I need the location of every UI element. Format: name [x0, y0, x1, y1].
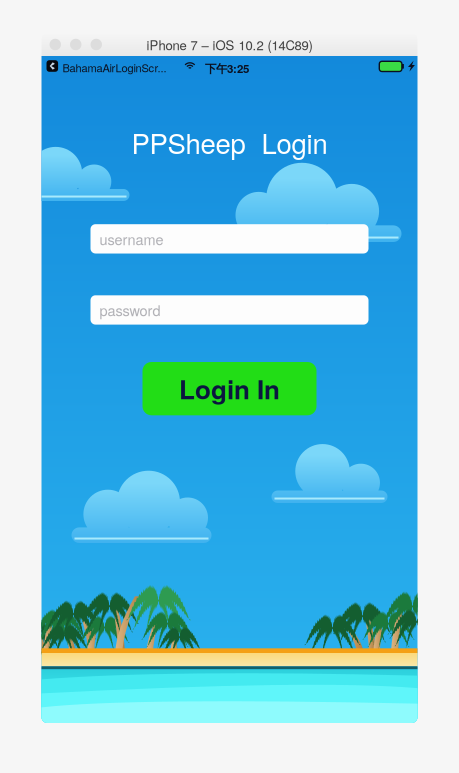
staticText: username — [99, 228, 163, 249]
staticText: BahamaAirLoginScr... — [62, 60, 166, 75]
staticText: 下午3:25 — [205, 60, 249, 76]
staticText: PPSheep Login — [131, 122, 327, 162]
staticText: password — [99, 299, 160, 320]
button[interactable]: Back — [46, 60, 58, 72]
button[interactable]: password — [90, 295, 368, 325]
staticText: Login In — [179, 370, 280, 407]
button[interactable]: username — [90, 224, 368, 253]
button[interactable]: Login In — [142, 362, 316, 415]
staticText: iPhone 7 – iOS 10.2 (14C89) — [146, 35, 312, 54]
